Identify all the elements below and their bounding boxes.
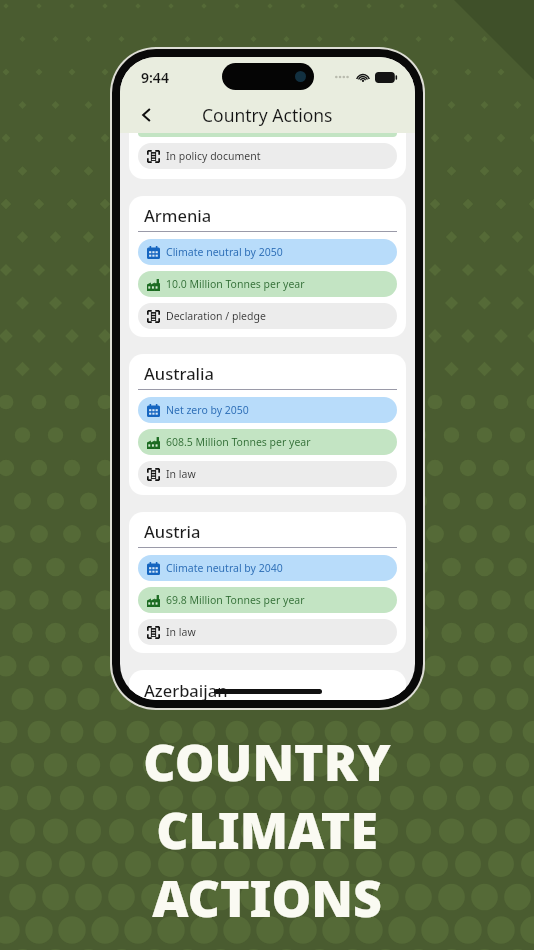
button[interactable]: In law	[138, 619, 397, 645]
staticText: 9:44	[141, 68, 169, 87]
staticText: Azerbaijan	[144, 679, 228, 700]
staticText: Climate neutral by 2040	[166, 561, 283, 575]
staticText: In policy document	[166, 149, 261, 163]
staticText: Net zero by 2050	[166, 403, 249, 417]
staticText: In law	[166, 467, 196, 481]
button[interactable]: 69.8 Million Tonnes per year	[138, 587, 397, 613]
staticText: 10.0 Million Tonnes per year	[166, 277, 305, 291]
staticText: In law	[166, 625, 196, 639]
button[interactable]: Azerbaijan	[129, 670, 406, 700]
staticText: Armenia	[144, 204, 212, 226]
button[interactable]: In law	[138, 461, 397, 487]
button[interactable]: Back	[130, 98, 164, 132]
button[interactable]: In policy document	[129, 133, 406, 179]
staticText: COUNTRY	[143, 728, 391, 796]
button[interactable]: Climate neutral by 2050	[138, 239, 397, 265]
staticText: Declaration / pledge	[166, 309, 266, 323]
staticText: CLIMATE	[156, 796, 378, 864]
staticText: Country Actions	[202, 103, 333, 127]
staticText: ACTIONS	[152, 864, 382, 932]
staticText: 69.8 Million Tonnes per year	[166, 593, 305, 607]
button[interactable]: Net zero by 2050	[138, 397, 397, 423]
button[interactable]: 608.5 Million Tonnes per year	[138, 429, 397, 455]
button[interactable]: Australia	[129, 354, 406, 495]
staticText: Australia	[144, 362, 214, 384]
staticText: 608.5 Million Tonnes per year	[166, 435, 311, 449]
button[interactable]: Climate neutral by 2040	[138, 555, 397, 581]
button[interactable]: Declaration / pledge	[138, 303, 397, 329]
staticText: Climate neutral by 2050	[166, 245, 283, 259]
button[interactable]: Austria	[129, 512, 406, 653]
button[interactable]: 10.0 Million Tonnes per year	[138, 271, 397, 297]
button[interactable]: Armenia	[129, 196, 406, 337]
staticText: Austria	[144, 520, 201, 542]
button[interactable]: In policy document	[138, 143, 397, 169]
